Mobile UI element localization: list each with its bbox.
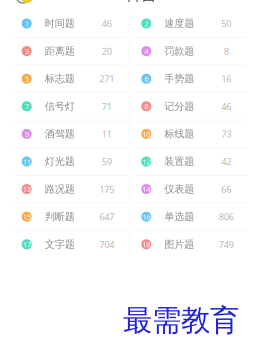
button[interactable]: 1 (11, 10, 130, 37)
staticText: 距离题 (45, 45, 75, 57)
staticText: 10 (142, 129, 150, 139)
button[interactable]: 4 (130, 38, 249, 65)
staticText: 175 (99, 183, 114, 195)
button[interactable]: 2 (130, 10, 249, 37)
button[interactable]: 6 (130, 65, 249, 92)
staticText: 手势题 (164, 72, 194, 85)
staticText: 59 (102, 155, 112, 168)
staticText: 17 (23, 239, 31, 249)
staticText: 806 (219, 210, 234, 223)
staticText: 46 (102, 17, 112, 30)
staticText: 1 (25, 18, 29, 29)
staticText: 20 (102, 45, 112, 57)
button[interactable]: 9 (11, 120, 130, 147)
staticText: 271 (99, 72, 114, 85)
staticText: 8 (144, 101, 148, 111)
staticText: 18 (142, 239, 150, 249)
staticText: 记分题 (164, 100, 194, 113)
button[interactable]: 17 (11, 231, 130, 258)
staticText: 50 (221, 17, 231, 30)
staticText: 73 (221, 127, 231, 140)
staticText: 14 (142, 184, 150, 194)
staticText: 12 (142, 156, 150, 167)
staticText: 标志题 (45, 72, 75, 85)
staticText: 8 (224, 45, 229, 57)
staticText: 704 (99, 238, 114, 251)
staticText: 路况题 (45, 183, 75, 195)
staticText: 2 (144, 18, 148, 29)
staticText: 灯光题 (45, 155, 75, 168)
staticText: 标线题 (164, 127, 194, 140)
staticText: 装置题 (164, 155, 194, 168)
staticText: 文字题 (45, 238, 75, 251)
button[interactable]: 13 (11, 176, 130, 203)
staticText: 11 (102, 127, 112, 140)
staticText: 749 (219, 238, 234, 251)
button[interactable]: 15 (11, 203, 130, 230)
button[interactable]: 18 (130, 231, 249, 258)
button[interactable]: 10 (130, 120, 249, 147)
staticText: 信号灯 (45, 100, 75, 113)
button[interactable]: 5 (11, 65, 130, 92)
button[interactable]: 3 (11, 38, 130, 65)
staticText: 时间题 (45, 17, 75, 30)
staticText: 6 (144, 73, 148, 84)
staticText: 速度题 (164, 17, 194, 30)
staticText: 66 (221, 183, 231, 195)
button[interactable]: 16 (130, 203, 249, 230)
staticText: 3 (25, 46, 29, 56)
staticText: 7 (25, 101, 29, 111)
staticText: 判断题 (45, 210, 75, 223)
staticText: 最需教育 (123, 302, 239, 339)
staticText: 46 (221, 100, 231, 113)
staticText: 42 (221, 155, 231, 168)
button[interactable]: 14 (130, 176, 249, 203)
staticText: 16 (142, 211, 150, 222)
button[interactable]: 12 (130, 148, 249, 175)
staticText: 16 (221, 72, 231, 85)
staticText: 单选题 (164, 210, 194, 223)
staticText: 科目一 (125, 0, 173, 5)
staticText: 4 (144, 46, 148, 56)
staticText: 图片题 (164, 238, 194, 251)
staticText: 71 (102, 100, 112, 113)
button[interactable]: 7 (11, 93, 130, 120)
button[interactable]: 11 (11, 148, 130, 175)
staticText: 5 (25, 73, 29, 84)
staticText: 仪表题 (164, 183, 194, 195)
staticText: 9 (25, 129, 29, 139)
staticText: 647 (99, 210, 114, 223)
button[interactable]: 8 (130, 93, 249, 120)
staticText: 15 (23, 211, 31, 222)
staticText: 酒驾题 (45, 127, 75, 140)
staticText: 13 (23, 184, 31, 194)
staticText: 11 (23, 156, 31, 167)
staticText: 罚款题 (164, 45, 194, 57)
